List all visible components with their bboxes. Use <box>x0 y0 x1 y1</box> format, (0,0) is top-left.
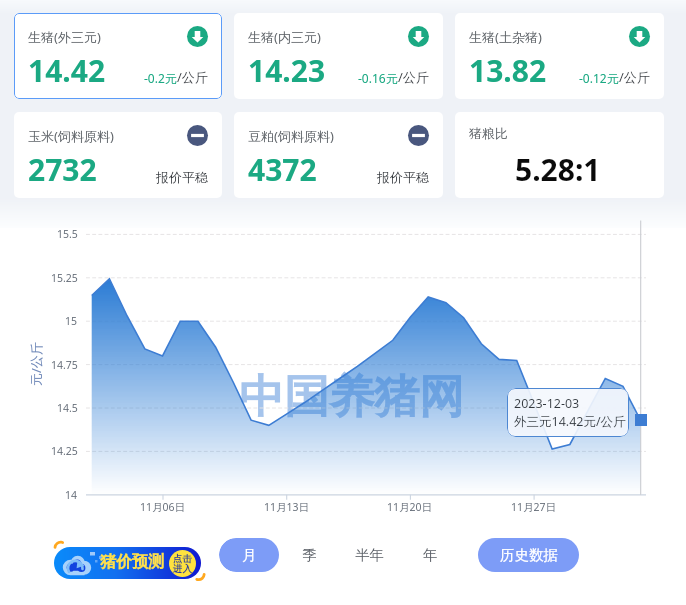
staticText: 元/公斤 <box>27 342 45 386</box>
staticText: -0.12元 <box>579 70 619 86</box>
staticText: 11月20日 <box>387 500 433 514</box>
staticText: 14.42 <box>28 50 106 91</box>
button[interactable]: 半年 <box>339 538 400 572</box>
staticText: 14 <box>65 488 78 502</box>
staticText: 15.5 <box>57 227 78 241</box>
staticText: 报价平稳 <box>156 169 208 185</box>
other: Price down <box>629 26 650 47</box>
other: Price flat <box>408 125 429 146</box>
staticText: 13.82 <box>469 50 547 91</box>
staticText: 14.75 <box>51 358 78 372</box>
staticText: 生猪(外三元) <box>28 28 101 46</box>
staticText: 生猪(内三元) <box>248 28 321 46</box>
staticText: 11月13日 <box>264 500 310 514</box>
staticText: 豆粕(饲料原料) <box>248 127 334 145</box>
staticText: 15 <box>65 314 78 328</box>
button[interactable]: 生猪(土杂猪) <box>455 13 664 99</box>
staticText: 生猪(土杂猪) <box>469 28 542 46</box>
staticText: 14.23 <box>248 50 326 91</box>
other: Price flat <box>187 125 208 146</box>
staticText: /公斤 <box>177 68 208 86</box>
staticText: 猪粮比 <box>469 125 508 141</box>
other: Price down <box>187 26 208 47</box>
staticText: /公斤 <box>398 68 429 86</box>
staticText: 中国养猪网 <box>239 369 464 425</box>
staticText: 猪价预测 <box>100 552 164 572</box>
staticText: 月 <box>242 546 257 564</box>
other: Price down <box>408 26 429 47</box>
button[interactable]: 生猪(外三元) <box>14 13 222 99</box>
button[interactable]: 玉米(饲料原料) <box>14 112 222 198</box>
button[interactable]: 年 <box>400 538 461 572</box>
button[interactable]: 猪粮比 <box>455 112 664 198</box>
staticText: 2023-12-03 <box>514 395 580 412</box>
staticText: 5.28:1 <box>515 149 601 190</box>
staticText: 外三元14.42元/公斤 <box>514 413 626 430</box>
staticText: 11月06日 <box>140 500 186 514</box>
staticText: 4372 <box>248 149 317 190</box>
button[interactable]: 生猪(内三元) <box>234 13 443 99</box>
staticText: 11月27日 <box>511 500 557 514</box>
staticText: 2732 <box>28 149 97 190</box>
button[interactable]: 历史数据 <box>478 538 579 572</box>
button[interactable]: 季 <box>279 538 339 572</box>
staticText: 季 <box>302 546 317 564</box>
staticText: 年 <box>423 546 438 564</box>
staticText: 玉米(饲料原料) <box>28 127 114 145</box>
staticText: 点击 进入 <box>173 553 192 575</box>
button[interactable]: 豆粕(饲料原料) <box>234 112 443 198</box>
staticText: /公斤 <box>619 68 650 86</box>
staticText: 14.5 <box>57 401 78 415</box>
staticText: -0.2元 <box>144 70 177 86</box>
staticText: 14.25 <box>51 444 78 458</box>
staticText: -0.16元 <box>358 70 398 86</box>
staticText: 报价平稳 <box>377 169 429 185</box>
button[interactable]: 猪价预测 <box>54 547 201 579</box>
staticText: 历史数据 <box>500 546 558 564</box>
staticText: 半年 <box>355 546 384 564</box>
button[interactable]: 月 <box>219 538 279 572</box>
staticText: 15.25 <box>51 271 78 285</box>
